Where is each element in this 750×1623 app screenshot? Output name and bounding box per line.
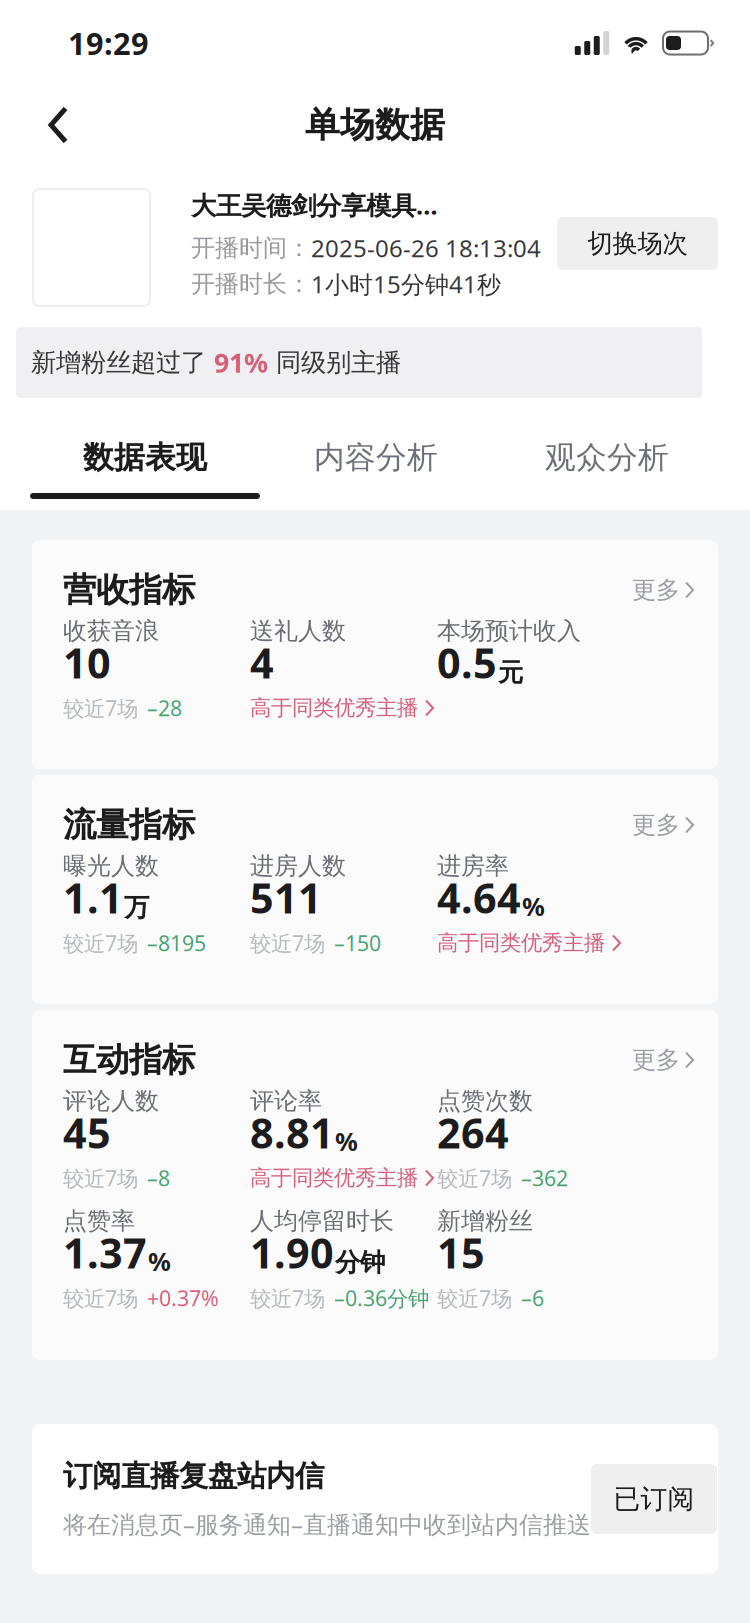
staticText: –6 <box>521 1284 544 1312</box>
button[interactable]: 更多 <box>632 1045 694 1075</box>
button[interactable]: 高于同类优秀主播 <box>250 690 434 726</box>
button[interactable]: 更多 <box>632 810 694 840</box>
staticText: 2025-06-26 18:13:04 <box>311 232 541 264</box>
staticText: 营收指标 <box>63 569 195 610</box>
staticText: 10 <box>63 635 111 690</box>
staticText: 较近7场 <box>250 1284 325 1312</box>
staticText: 开播时长： <box>191 269 311 299</box>
staticText: 19:29 <box>68 23 149 63</box>
button[interactable]: 切换场次 <box>557 217 718 270</box>
staticText: 91% <box>214 345 268 380</box>
staticText: 开播时间： <box>191 233 311 263</box>
staticText: 流量指标 <box>63 804 195 845</box>
staticText: 0.5 <box>437 635 497 690</box>
staticText: 订阅直播复盘站内信 <box>63 1458 324 1494</box>
staticText: 264 <box>437 1105 509 1160</box>
staticText: 高于同类优秀主播 <box>250 695 418 721</box>
staticText: 1小时15分钟41秒 <box>311 268 501 300</box>
staticText: 送礼人数 <box>250 616 346 646</box>
staticText: % <box>148 1244 171 1278</box>
button[interactable]: Back <box>22 89 94 161</box>
staticText: 曝光人数 <box>63 851 159 881</box>
button[interactable]: 高于同类优秀主播 <box>250 1160 434 1196</box>
staticText: 收获音浪 <box>63 616 159 646</box>
staticText: 观众分析 <box>545 439 669 476</box>
staticText: 元 <box>498 657 523 688</box>
staticText: 单场数据 <box>305 104 445 146</box>
staticText: 分钟 <box>335 1247 385 1278</box>
staticText: 4.64 <box>437 870 521 925</box>
staticText: 点赞率 <box>63 1206 135 1236</box>
staticText: 评论率 <box>250 1086 322 1116</box>
staticText: 更多 <box>632 575 680 605</box>
button[interactable]: 更多 <box>632 575 694 605</box>
staticText: 同级别主播 <box>268 347 401 378</box>
button[interactable]: 高于同类优秀主播 <box>437 925 621 961</box>
staticText: 已订阅 <box>613 1483 694 1515</box>
staticText: 1.1 <box>63 870 123 925</box>
staticText: % <box>522 889 545 923</box>
staticText: 互动指标 <box>63 1039 195 1080</box>
staticText: 1.90 <box>250 1225 334 1280</box>
staticText: –28 <box>147 694 182 722</box>
staticText: 将在消息页–服务通知–直播通知中收到站内信推送 <box>63 1508 591 1540</box>
staticText: 新增粉丝超过了 <box>31 347 214 378</box>
staticText: +0.37% <box>147 1284 219 1312</box>
staticText: –8195 <box>147 929 206 957</box>
staticText: –8 <box>147 1164 170 1192</box>
staticText: 万 <box>124 892 149 923</box>
staticText: 数据表现 <box>83 439 207 476</box>
staticText: 较近7场 <box>250 929 325 957</box>
staticText: 高于同类优秀主播 <box>250 1165 418 1191</box>
staticText: 45 <box>63 1105 111 1160</box>
staticText: 较近7场 <box>437 1284 512 1312</box>
staticText: % <box>335 1124 358 1158</box>
staticText: 511 <box>250 870 322 925</box>
staticText: 本场预计收入 <box>437 616 581 646</box>
staticText: 较近7场 <box>63 929 138 957</box>
staticText: 新增粉丝 <box>437 1206 533 1236</box>
button[interactable]: 内容分析 <box>261 422 491 510</box>
staticText: 大王吴德剑分享模具… <box>191 188 438 222</box>
staticText: 较近7场 <box>63 1284 138 1312</box>
staticText: 评论人数 <box>63 1086 159 1116</box>
button[interactable]: 数据表现 <box>30 422 260 510</box>
staticText: 进房率 <box>437 851 509 881</box>
staticText: 15 <box>437 1225 485 1280</box>
button[interactable]: 已订阅 <box>591 1464 717 1534</box>
staticText: 切换场次 <box>587 228 687 259</box>
button[interactable]: 观众分析 <box>492 422 722 510</box>
staticText: 高于同类优秀主播 <box>437 930 605 956</box>
staticText: –0.36分钟 <box>334 1284 429 1312</box>
staticText: 较近7场 <box>437 1164 512 1192</box>
staticText: 点赞次数 <box>437 1086 533 1116</box>
staticText: 1.37 <box>63 1225 147 1280</box>
staticText: 4 <box>250 635 274 690</box>
staticText: 较近7场 <box>63 694 138 722</box>
staticText: 较近7场 <box>63 1164 138 1192</box>
staticText: –362 <box>521 1164 568 1192</box>
staticText: –150 <box>334 929 381 957</box>
staticText: 进房人数 <box>250 851 346 881</box>
staticText: 8.81 <box>250 1105 334 1160</box>
staticText: 人均停留时长 <box>250 1206 394 1236</box>
staticText: 更多 <box>632 1045 680 1075</box>
staticText: 内容分析 <box>314 439 438 476</box>
staticText: 更多 <box>632 810 680 840</box>
